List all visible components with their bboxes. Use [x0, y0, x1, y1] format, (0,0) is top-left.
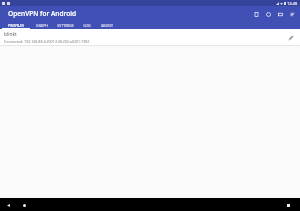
button[interactable]: ABOUT [96, 21, 118, 29]
button[interactable]: Back [4, 201, 12, 209]
staticText: PROFILES [8, 23, 24, 28]
button[interactable]: SETTINGS [53, 21, 78, 29]
staticText: blinkt [4, 31, 17, 38]
button[interactable]: LOG [78, 21, 96, 29]
staticText: 12:48 [287, 1, 298, 6]
button[interactable]: PROFILES [2, 21, 30, 29]
button[interactable]: Help [263, 9, 273, 19]
button[interactable]: Edit profile [286, 33, 296, 43]
button[interactable]: Add profile [275, 9, 285, 19]
button[interactable]: Recent apps [284, 201, 292, 209]
staticText: GRAPH [36, 23, 48, 28]
staticText: OpenVPN for Android [8, 9, 77, 18]
button[interactable]: Home [20, 201, 28, 209]
staticText: SETTINGS [57, 23, 74, 28]
button[interactable]: GRAPH [30, 21, 53, 29]
button[interactable]: More options [287, 9, 297, 19]
button[interactable]: blinkt [0, 29, 300, 46]
staticText: LOG [83, 23, 91, 28]
staticText: Connected: 192.168.88.4:2001:638:202:a02… [4, 39, 90, 44]
button[interactable]: Import profile from file [251, 9, 261, 19]
staticText: ABOUT [101, 23, 113, 28]
